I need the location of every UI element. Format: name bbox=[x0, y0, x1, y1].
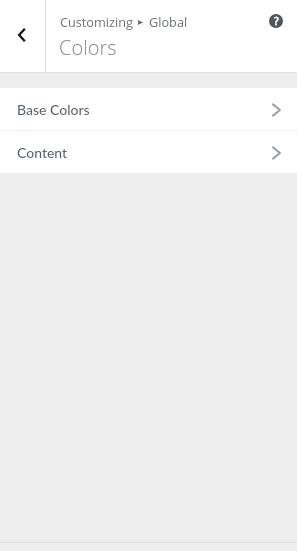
button[interactable]: Back bbox=[0, 0, 45, 72]
button[interactable]: Help bbox=[262, 0, 297, 72]
button[interactable]: Base Colors bbox=[0, 88, 297, 130]
staticText: Global bbox=[149, 13, 188, 30]
staticText: ? bbox=[274, 14, 279, 27]
button[interactable]: Content bbox=[0, 131, 297, 173]
staticText: Content bbox=[17, 144, 68, 161]
staticText: Customizing bbox=[60, 13, 133, 30]
staticText: Colors bbox=[59, 34, 117, 61]
staticText: Base Colors bbox=[17, 101, 90, 118]
